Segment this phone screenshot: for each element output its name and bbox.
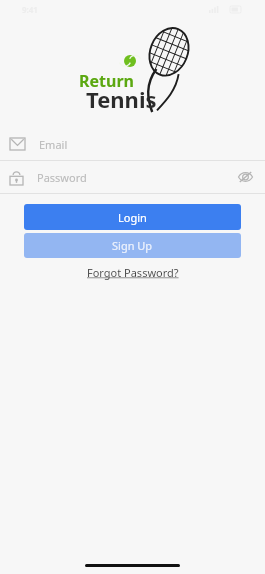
staticText: Forgot Password? [87, 265, 179, 280]
button[interactable]: Sign Up [24, 233, 241, 258]
staticText: Return [79, 70, 134, 92]
button[interactable]: Show password [235, 167, 255, 187]
staticText: Sign Up [112, 238, 153, 253]
button[interactable]: Email [0, 128, 265, 160]
button[interactable]: Forgot Password? [83, 264, 183, 281]
staticText: Login [118, 210, 147, 225]
staticText: Password [37, 170, 87, 185]
button[interactable]: Login [24, 204, 241, 230]
staticText: Tennis [86, 84, 157, 114]
button[interactable]: Password [0, 161, 265, 193]
staticText: Email [39, 137, 68, 152]
staticText: 9:41 [22, 4, 38, 15]
